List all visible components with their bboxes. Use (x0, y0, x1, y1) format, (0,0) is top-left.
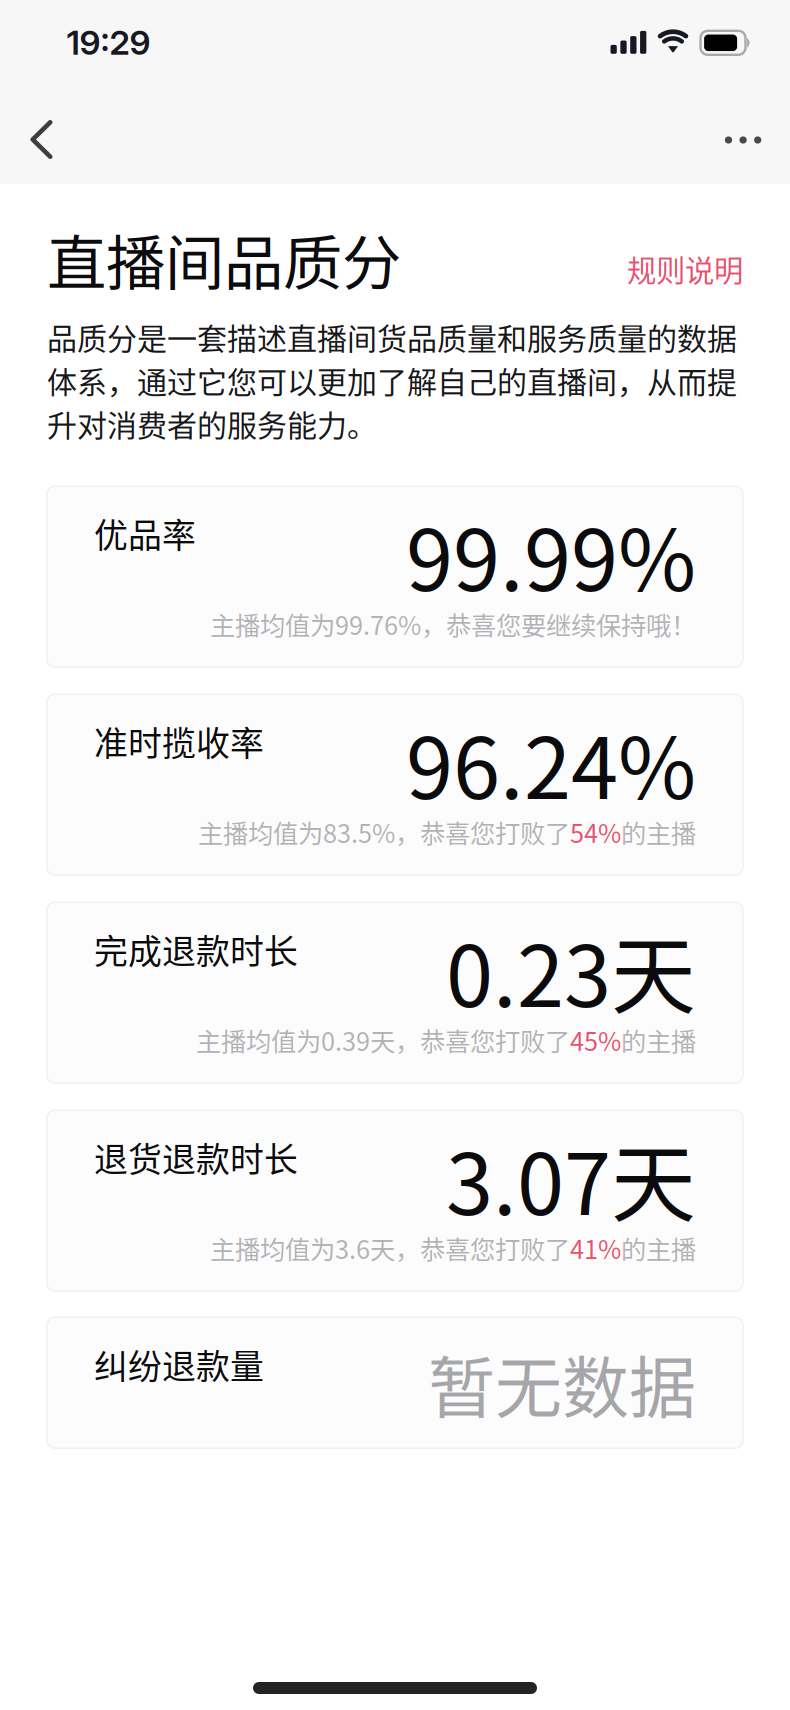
staticText: 纠纷退款量 (94, 1340, 264, 1389)
button[interactable]: Back (0, 92, 82, 184)
staticText: 准时揽收率 (94, 717, 264, 766)
staticText: 3.07天 (446, 1116, 696, 1239)
staticText: 99.99% (406, 492, 696, 615)
button[interactable]: 完成退款时长 (47, 902, 743, 1083)
button[interactable]: 纠纷退款量 (47, 1317, 743, 1448)
staticText: 退货退款时长 (94, 1133, 298, 1182)
staticText: 的主播 (621, 1021, 696, 1058)
staticText: 直播间品质分 (47, 216, 401, 302)
button[interactable]: 规则说明 (627, 247, 743, 302)
staticText: 96.24% (406, 700, 696, 823)
staticText: 品质分是一套描述直播间货品质量和服务质量的数据体系，通过它您可以更加了解自己的直… (47, 315, 737, 445)
button[interactable]: 准时揽收率 (47, 694, 743, 875)
staticText: 主播均值为3.6天，恭喜您打败了 (210, 1229, 570, 1266)
staticText: 规则说明 (627, 247, 743, 290)
staticText: 完成退款时长 (94, 925, 298, 974)
staticText: 的主播 (621, 1229, 696, 1266)
staticText: 41% (570, 1229, 621, 1266)
staticText: 优品率 (94, 509, 196, 558)
staticText: 45% (570, 1021, 621, 1058)
button[interactable]: 退货退款时长 (47, 1110, 743, 1291)
staticText: 主播均值为99.76%，恭喜您要继续保持哦！ (210, 605, 696, 642)
staticText: 的主播 (621, 813, 696, 850)
staticText: 0.23天 (446, 908, 696, 1031)
staticText: 暂无数据 (428, 1335, 696, 1432)
staticText: 主播均值为83.5%，恭喜您打败了 (198, 813, 570, 850)
staticText: 54% (570, 813, 621, 850)
staticText: 19:29 (67, 22, 151, 63)
button[interactable]: More options (697, 92, 790, 184)
button[interactable]: 优品率 (47, 486, 743, 667)
staticText: 主播均值为0.39天，恭喜您打败了 (196, 1021, 570, 1058)
